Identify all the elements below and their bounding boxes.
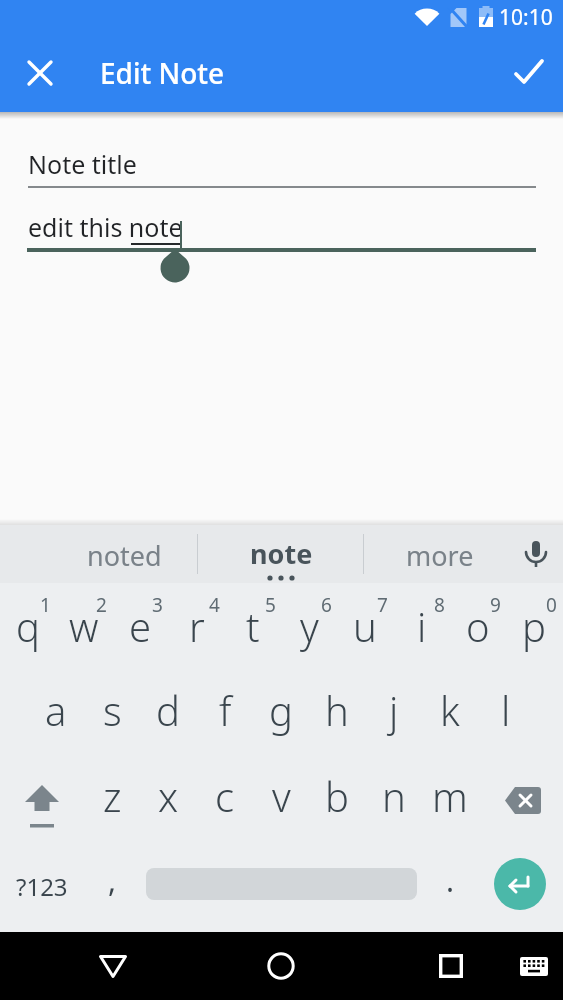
staticText: 0 <box>546 592 557 618</box>
button[interactable]: c <box>197 754 253 838</box>
button[interactable] <box>509 527 563 581</box>
button[interactable]: ?123 <box>2 844 82 928</box>
button[interactable]: e <box>112 584 168 668</box>
staticText: 4 <box>209 592 220 618</box>
staticText: x <box>158 769 179 823</box>
staticText: n <box>382 769 406 823</box>
staticText: m <box>432 769 468 823</box>
button[interactable]: j <box>366 668 422 752</box>
button[interactable]: , <box>87 845 137 915</box>
staticText: h <box>325 683 349 737</box>
staticText: 1 <box>40 592 51 618</box>
button[interactable] <box>501 45 557 101</box>
button[interactable]: edit this note <box>28 205 536 249</box>
button[interactable]: a <box>28 668 84 752</box>
button[interactable] <box>85 938 141 994</box>
staticText: 5 <box>265 592 276 618</box>
button[interactable]: v <box>253 754 309 838</box>
button[interactable]: k <box>422 668 478 752</box>
staticText: b <box>325 769 349 823</box>
staticText: s <box>103 683 122 737</box>
button[interactable]: o <box>450 584 506 668</box>
button[interactable] <box>506 938 562 994</box>
staticText: ?123 <box>16 870 68 903</box>
button[interactable]: w <box>56 584 112 668</box>
button[interactable] <box>253 938 309 994</box>
button[interactable]: u <box>337 584 393 668</box>
button[interactable]: y <box>281 584 337 668</box>
button[interactable]: t <box>225 584 281 668</box>
staticText: j <box>389 683 399 737</box>
button[interactable]: d <box>140 668 196 752</box>
staticText: f <box>219 683 232 737</box>
button[interactable]: g <box>253 668 309 752</box>
staticText: d <box>156 683 180 737</box>
button[interactable]: i <box>394 584 450 668</box>
staticText: p <box>522 599 546 653</box>
staticText: l <box>501 683 511 737</box>
button[interactable]: z <box>84 754 140 838</box>
button[interactable] <box>423 938 479 994</box>
staticText: a <box>45 683 67 737</box>
button[interactable]: n <box>366 754 422 838</box>
staticText: Edit Note <box>100 54 225 92</box>
button[interactable]: note <box>201 528 361 578</box>
staticText: i <box>417 599 427 653</box>
staticText: t <box>246 599 260 653</box>
staticText: u <box>353 599 377 653</box>
button[interactable]: Note title <box>28 140 536 188</box>
button[interactable]: m <box>422 754 478 838</box>
staticText: . <box>446 860 455 901</box>
button[interactable]: more <box>365 526 515 584</box>
button[interactable]: s <box>84 668 140 752</box>
button[interactable] <box>487 758 559 842</box>
staticText: e <box>129 599 152 653</box>
staticText: note <box>250 535 313 572</box>
button[interactable]: q <box>0 584 56 668</box>
staticText: edit this note <box>28 210 183 244</box>
staticText: 9 <box>490 592 501 618</box>
staticText: w <box>69 599 99 653</box>
button[interactable] <box>6 764 78 848</box>
staticText: v <box>272 769 291 823</box>
staticText: more <box>406 537 474 574</box>
staticText: , <box>108 860 117 901</box>
staticText: q <box>16 599 40 653</box>
button[interactable]: noted <box>50 526 198 584</box>
staticText: Note title <box>28 147 137 181</box>
staticText: 6 <box>321 592 332 618</box>
button[interactable]: p <box>506 584 562 668</box>
staticText: r <box>189 599 205 653</box>
button[interactable]: b <box>309 754 365 838</box>
button[interactable] <box>12 45 68 101</box>
button[interactable]: . <box>425 845 475 915</box>
staticText: 10:10 <box>499 3 553 32</box>
staticText: z <box>103 769 122 823</box>
staticText: 3 <box>152 592 163 618</box>
staticText: k <box>440 683 460 737</box>
staticText: c <box>215 769 235 823</box>
staticText: g <box>269 683 293 737</box>
button[interactable]: r <box>169 584 225 668</box>
staticText: y <box>300 599 319 653</box>
staticText: noted <box>87 537 162 574</box>
button[interactable]: f <box>197 668 253 752</box>
staticText: 2 <box>96 592 107 618</box>
button[interactable]: l <box>478 668 534 752</box>
button[interactable] <box>494 858 546 910</box>
button[interactable]: x <box>140 754 196 838</box>
staticText: o <box>466 599 490 653</box>
button[interactable]: h <box>309 668 365 752</box>
staticText: 8 <box>434 592 445 618</box>
staticText: 7 <box>377 592 388 618</box>
